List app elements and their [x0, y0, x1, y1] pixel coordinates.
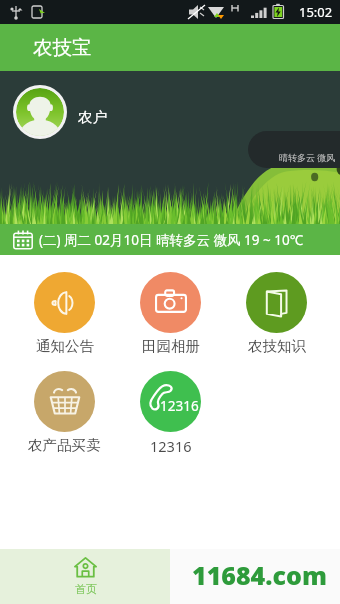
- staticText: 首页: [75, 582, 97, 596]
- staticText: 晴转多云 微风: [279, 151, 336, 163]
- button[interactable]: 田园相册: [136, 270, 205, 357]
- staticText: 12316: [160, 397, 199, 415]
- staticText: 通知公告: [36, 337, 94, 355]
- staticText: 12316: [150, 436, 192, 456]
- staticText: 田园相册: [142, 337, 200, 355]
- staticText: 15:02: [299, 3, 333, 21]
- staticText: 11684.com: [192, 558, 327, 592]
- button[interactable]: 12316: [136, 369, 205, 458]
- staticText: 农技知识: [248, 337, 306, 355]
- button[interactable]: 农技知识: [242, 270, 311, 357]
- staticText: (二) 周二 02月10日 晴转多云 微风 19 ~ 10℃: [39, 231, 304, 249]
- button[interactable]: 通知公告: [30, 270, 99, 357]
- button[interactable]: 农产品买卖: [24, 369, 105, 456]
- staticText: 农产品买卖: [28, 436, 101, 454]
- button[interactable]: 首页: [0, 549, 170, 604]
- staticText: 农技宝: [33, 35, 92, 60]
- button[interactable]: Profile: [16, 88, 64, 136]
- staticText: 农户: [78, 108, 107, 126]
- button[interactable]: 晴转多云 微风: [248, 131, 340, 168]
